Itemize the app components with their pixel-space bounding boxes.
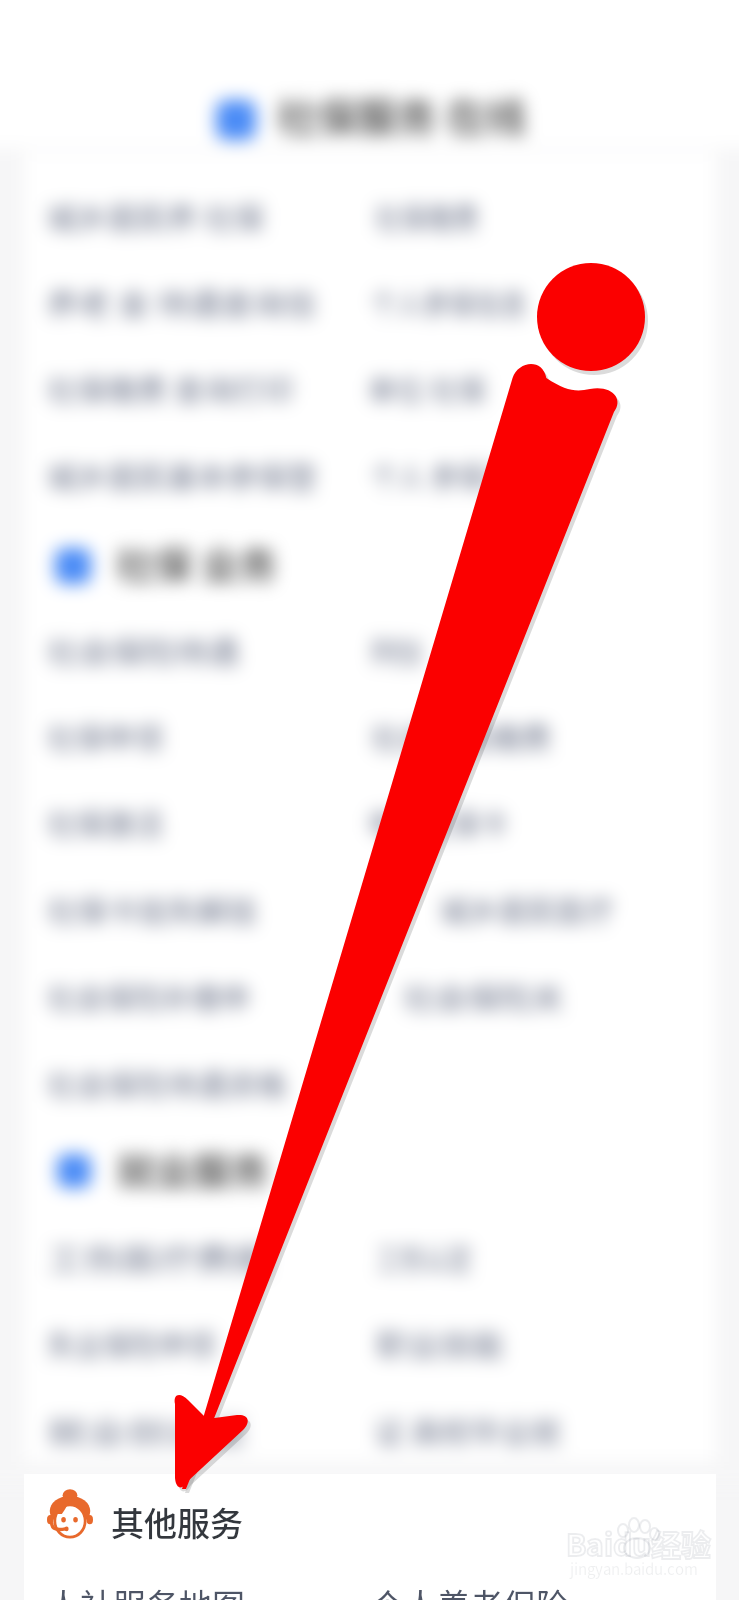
button[interactable]: 服务项目 (40, 885, 340, 937)
button[interactable]: 服务项目 (362, 798, 662, 850)
button[interactable]: 服务项目 (370, 1233, 670, 1285)
button[interactable]: 服务项目 (40, 798, 340, 850)
button[interactable]: 服务项目 (40, 972, 340, 1024)
button[interactable]: 服务项目 (365, 626, 665, 678)
button[interactable]: 服务项目 (362, 364, 662, 416)
button[interactable]: 服务项目 (40, 192, 340, 244)
button[interactable]: 服务项目 (40, 451, 340, 503)
button[interactable]: 服务项目 (40, 1406, 340, 1458)
button[interactable]: 服务项目 (40, 712, 340, 764)
button[interactable]: 服务项目 (40, 278, 340, 330)
button[interactable]: 服务项目 (40, 1059, 340, 1111)
button[interactable]: 服务项目 (365, 278, 665, 330)
button[interactable]: 服务项目 (397, 972, 697, 1024)
button[interactable]: 服务项目 (40, 626, 340, 678)
button[interactable]: 服务项目 (365, 451, 665, 503)
button[interactable]: 服务项目 (370, 1319, 670, 1371)
button[interactable]: 服务项目 (40, 1233, 340, 1285)
button[interactable]: 社保服务中心 (186, 80, 546, 150)
button[interactable]: 服务项目 (368, 1406, 668, 1458)
button[interactable]: 服务项目 (365, 712, 665, 764)
button[interactable]: 服务项目 (40, 1319, 340, 1371)
button[interactable]: 其他服务 (24, 1474, 716, 1562)
button[interactable]: 服务项目 (434, 885, 734, 937)
button[interactable]: 服务项目 (369, 192, 669, 244)
button[interactable]: 服务项目 (40, 364, 340, 416)
